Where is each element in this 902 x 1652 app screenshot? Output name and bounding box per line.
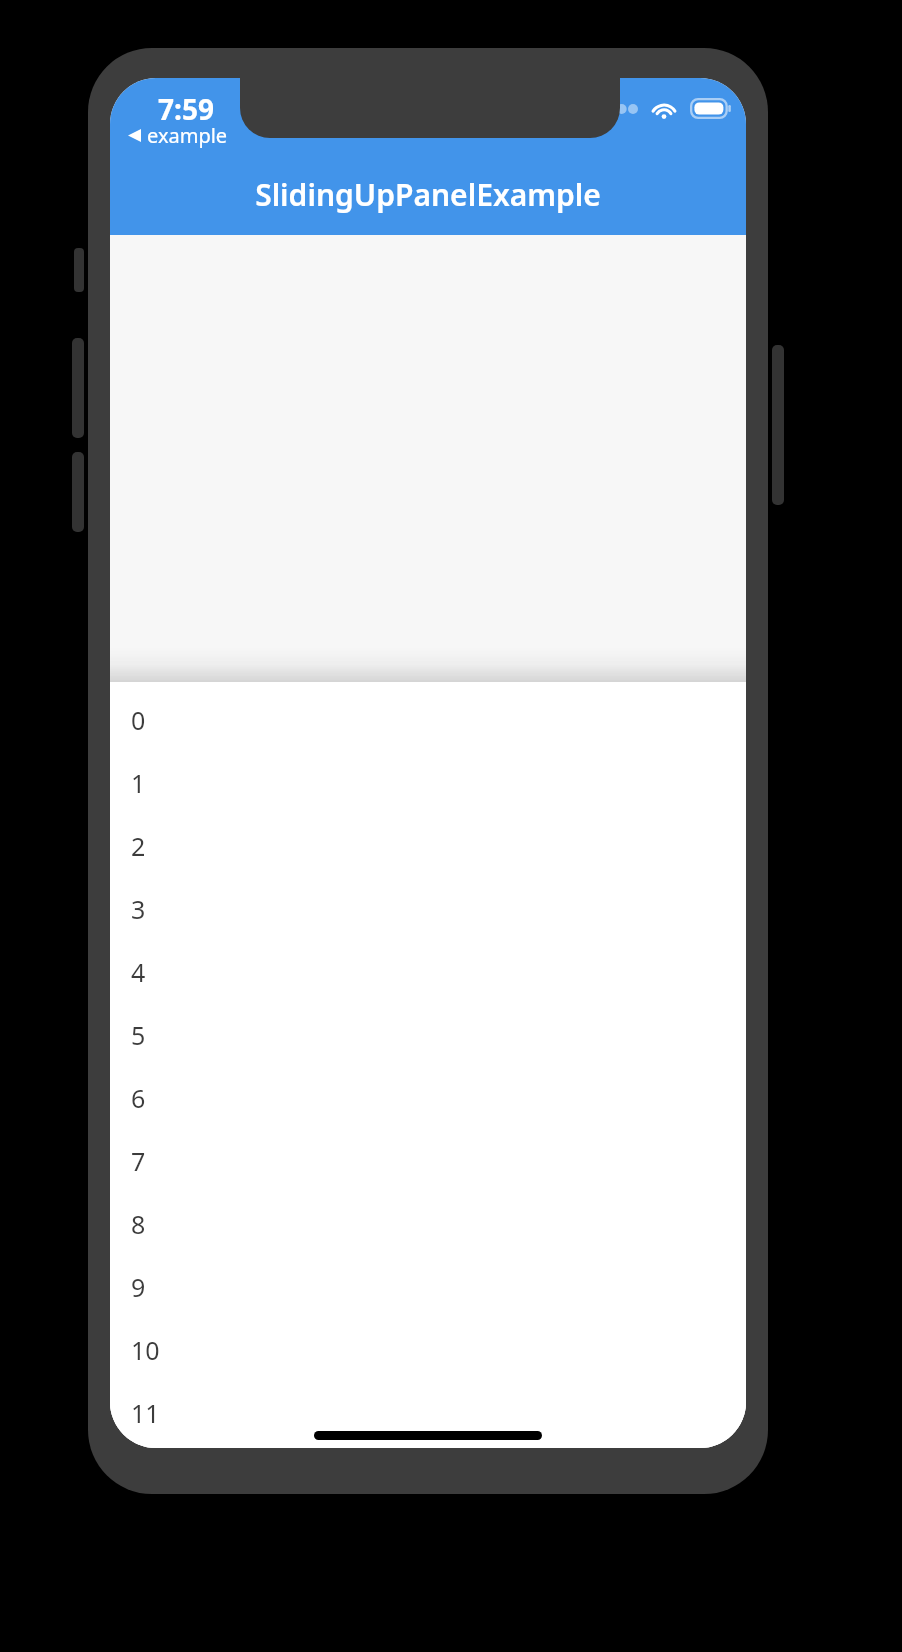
staticText: 2 [131,829,146,863]
staticText: 9 [131,1270,146,1304]
staticText: 10 [131,1333,160,1367]
button[interactable]: 2 [110,814,746,877]
staticText: 0 [131,703,146,737]
other: Back to example [128,129,141,142]
staticText: 6 [131,1081,146,1115]
other: Cellular signal [594,104,638,114]
staticText: example [147,122,228,149]
staticText: 1 [131,766,146,800]
button[interactable]: 6 [110,1066,746,1129]
button[interactable]: 7 [110,1129,746,1192]
staticText: SlidingUpPanelExample [255,174,601,215]
button[interactable]: 8 [110,1192,746,1255]
button[interactable]: 4 [110,940,746,1003]
button[interactable]: 1 [110,751,746,814]
other: Wi-Fi [650,98,678,119]
button[interactable]: 0 [110,688,746,751]
button[interactable]: 5 [110,1003,746,1066]
staticText: 7 [131,1144,146,1178]
staticText: 7:59 [158,90,214,128]
other: Battery full [690,98,732,119]
button[interactable]: 9 [110,1255,746,1318]
button[interactable]: 3 [110,877,746,940]
staticText: 3 [131,892,146,926]
button[interactable]: 11 [110,1381,746,1444]
staticText: 8 [131,1207,146,1241]
button[interactable]: 10 [110,1318,746,1381]
staticText: 5 [131,1018,146,1052]
staticText: 4 [131,955,146,989]
button[interactable]: Back to example [124,120,232,151]
staticText: 11 [131,1396,160,1430]
